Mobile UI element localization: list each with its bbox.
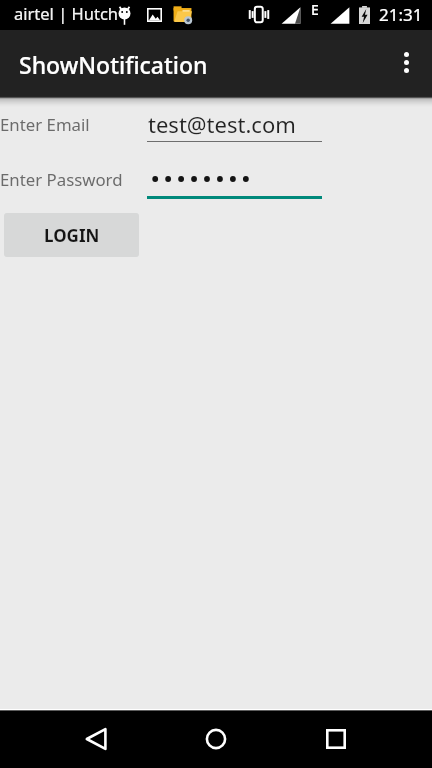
staticText: 21:31 [379,3,423,26]
button[interactable]: LOGIN [4,213,139,257]
button[interactable]: Back [60,712,132,765]
staticText: airtel | Hutch [14,2,119,24]
button[interactable]: test@test.com [147,109,322,142]
button[interactable]: Enter Email [0,108,146,142]
staticText: LOGIN [44,224,100,247]
staticText: E [311,0,319,19]
button[interactable]: Recent apps [300,712,372,765]
staticText: Enter Email [0,113,90,136]
button[interactable]: Password input field [147,164,322,199]
button[interactable]: Enter Password [0,163,146,197]
staticText: Enter Password [0,168,123,191]
button[interactable]: More options [384,40,428,84]
staticText: ShowNotification [19,49,208,80]
button[interactable]: Home [180,712,252,765]
staticText: test@test.com [148,109,296,139]
